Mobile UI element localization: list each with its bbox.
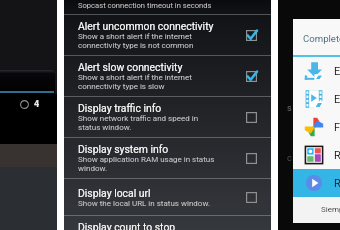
staticText: connectivity type is not common [78, 41, 194, 50]
staticText: window. [78, 164, 108, 173]
button[interactable]: E [293, 85, 340, 113]
staticText: E [334, 93, 340, 106]
button[interactable]: Alert slow connectivity [64, 56, 271, 96]
staticText: Show a short alert if the internet [78, 73, 192, 82]
button[interactable]: R [293, 169, 340, 197]
staticText: Alert uncommon connectivity [78, 20, 214, 32]
staticText: Sopcast connection timeout in seconds [78, 1, 212, 10]
button[interactable]: E [293, 57, 340, 85]
staticText: s [287, 103, 292, 114]
staticText: Alert slow connectivity [78, 61, 183, 73]
staticText: Show a short alert if the internet [78, 32, 192, 41]
button[interactable]: Display local url [64, 179, 271, 215]
button[interactable]: Display traffic info [64, 97, 271, 137]
staticText: F [334, 121, 340, 134]
button[interactable]: Alert uncommon connectivity [64, 15, 271, 55]
staticText: status window. [78, 123, 132, 132]
staticText: Siempre [321, 205, 340, 214]
button[interactable]: Alert uncommon connectivity [238, 23, 265, 47]
staticText: Show application RAM usage in status [78, 155, 215, 164]
button[interactable]: Display count to stop [64, 216, 271, 230]
staticText: Display count to stop [78, 221, 176, 230]
staticText: R [334, 149, 340, 162]
button[interactable]: Display system info [64, 138, 271, 178]
staticText: Show network traffic and speed in [78, 114, 199, 123]
button[interactable]: R [293, 141, 340, 169]
button[interactable]: Display local url [238, 185, 265, 209]
other: Decrease value [20, 100, 29, 109]
staticText: Display traffic info [78, 102, 162, 114]
staticText: connectivity type is slow [78, 82, 165, 91]
button[interactable]: F [293, 113, 340, 141]
staticText: Display local url [78, 187, 151, 199]
button[interactable]: Display traffic info [238, 105, 265, 129]
staticText: 4 [34, 99, 40, 110]
button[interactable]: Alert slow connectivity [238, 64, 265, 88]
staticText: Complete [303, 33, 340, 44]
staticText: Show the local URL in status window. [78, 199, 211, 208]
staticText: E [334, 65, 340, 78]
button[interactable]: Display system info [238, 146, 265, 170]
staticText: R [334, 177, 340, 190]
staticText: c [287, 153, 292, 164]
staticText: Display system info [78, 143, 169, 155]
